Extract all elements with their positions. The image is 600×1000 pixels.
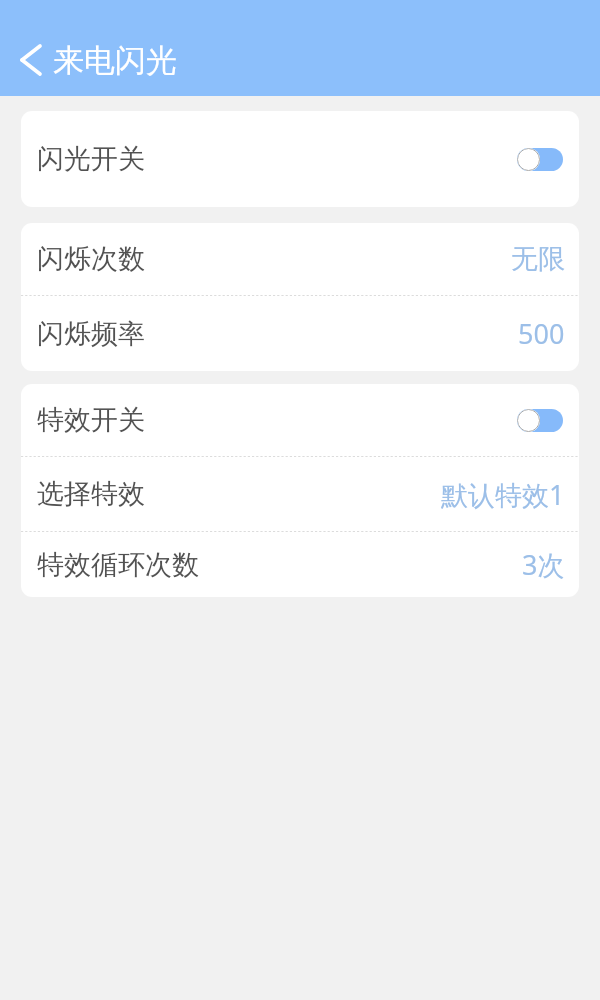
staticText: 选择特效 bbox=[37, 477, 145, 511]
button[interactable]: Back bbox=[0, 24, 53, 96]
button[interactable]: Toggle bbox=[517, 148, 563, 171]
staticText: 默认特效1 bbox=[441, 476, 565, 513]
button[interactable]: Toggle bbox=[517, 409, 563, 432]
staticText: 无限 bbox=[511, 242, 565, 276]
staticText: 闪烁次数 bbox=[37, 242, 145, 276]
button[interactable]: 闪烁次数 bbox=[21, 223, 579, 295]
button[interactable]: 特效循环次数 bbox=[21, 532, 579, 597]
button[interactable]: 闪光开关 bbox=[21, 111, 579, 207]
staticText: 特效开关 bbox=[37, 403, 145, 437]
button[interactable]: 特效开关 bbox=[21, 384, 579, 456]
staticText: 500 bbox=[518, 315, 565, 352]
button[interactable]: 闪烁频率 bbox=[21, 296, 579, 371]
button[interactable]: 选择特效 bbox=[21, 457, 579, 531]
staticText: 特效循环次数 bbox=[37, 548, 199, 582]
staticText: 闪光开关 bbox=[37, 142, 145, 176]
staticText: 3次 bbox=[522, 546, 565, 583]
staticText: 来电闪光 bbox=[53, 41, 177, 80]
staticText: 闪烁频率 bbox=[37, 317, 145, 351]
